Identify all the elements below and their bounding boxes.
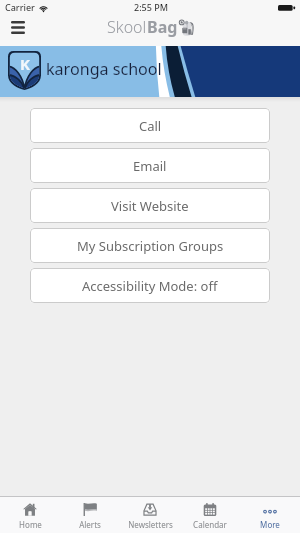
staticText: Newsletters [128, 519, 173, 530]
button[interactable]: More [240, 497, 300, 533]
staticText: Carrier [5, 1, 35, 13]
staticText: Visit Website [111, 197, 189, 215]
button[interactable]: Calendar [180, 497, 240, 533]
button[interactable]: Menu [5, 18, 31, 41]
button[interactable]: My Subscription Groups [30, 228, 270, 263]
button[interactable]: Accessibility Mode: off [30, 268, 270, 303]
staticText: karonga school [46, 58, 162, 80]
staticText: Home [19, 519, 42, 530]
staticText: Accessibility Mode: off [82, 277, 218, 295]
staticText: Email [133, 157, 167, 175]
staticText: Alerts [79, 519, 101, 530]
staticText: K [20, 54, 30, 74]
staticText: More [260, 519, 280, 530]
button[interactable]: Home [0, 497, 60, 533]
staticText: Call [139, 117, 162, 135]
button[interactable]: Call [30, 108, 270, 143]
button[interactable]: Alerts [60, 497, 120, 533]
staticText: My Subscription Groups [77, 237, 224, 255]
staticText: Bag [147, 16, 178, 38]
button[interactable]: Email [30, 148, 270, 183]
staticText: Calendar [193, 519, 227, 530]
button[interactable]: Newsletters [120, 497, 180, 533]
staticText: 2:55 PM [134, 1, 168, 13]
staticText: Skool [107, 16, 147, 38]
button[interactable]: Visit Website [30, 188, 270, 223]
